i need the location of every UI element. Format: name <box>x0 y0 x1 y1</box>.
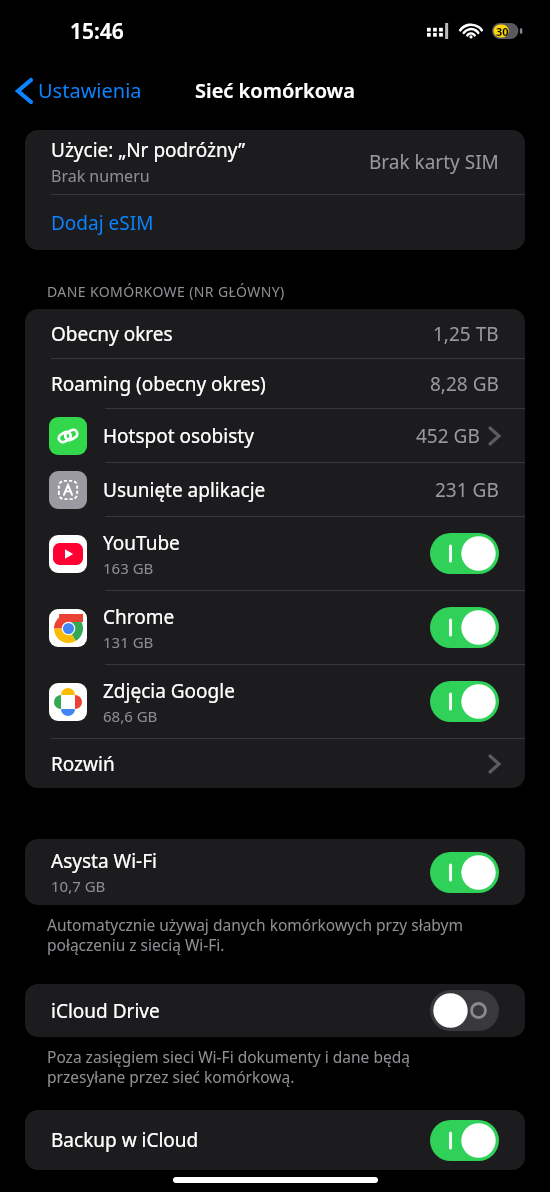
staticText: 68,6 GB <box>103 706 158 726</box>
staticText: 163 GB <box>103 558 154 578</box>
staticText: Brak karty SIM <box>369 149 499 175</box>
staticText: Brak numeru <box>51 165 150 187</box>
staticText: Roaming (obecny okres) <box>51 371 430 397</box>
button[interactable]: Zdjęcia Google <box>25 665 525 738</box>
button[interactable]: Asysta Wi-Fi <box>25 839 525 905</box>
button[interactable]: YouTube <box>25 517 525 590</box>
button[interactable]: Użycie: „Nr podróżny” <box>25 130 525 194</box>
button[interactable]: Hotspot osobisty <box>25 409 525 462</box>
button[interactable]: Włączone <box>430 607 499 648</box>
staticText: Zdjęcia Google <box>103 678 235 704</box>
button[interactable]: Włączone <box>430 681 499 722</box>
staticText: Obecny okres <box>51 321 433 347</box>
staticText: Rozwiń <box>51 751 490 777</box>
button[interactable]: Włączone <box>430 533 499 574</box>
staticText: 15:46 <box>70 17 124 46</box>
staticText: 8,28 GB <box>430 371 499 397</box>
button[interactable]: Chrome <box>25 591 525 664</box>
button[interactable]: Włączone <box>430 1120 499 1161</box>
staticText: Poza zasięgiem sieci Wi-Fi dokumenty i d… <box>47 1046 410 1088</box>
staticText: Chrome <box>103 604 175 630</box>
button[interactable]: Wyłączone <box>430 990 499 1031</box>
staticText: Hotspot osobisty <box>103 423 254 449</box>
staticText: Sieć komórkowa <box>195 77 355 104</box>
staticText: YouTube <box>103 530 180 556</box>
button[interactable]: Rozwiń <box>25 739 525 788</box>
staticText: 131 GB <box>103 632 154 652</box>
staticText: iCloud Drive <box>51 998 430 1024</box>
staticText: 452 GB <box>416 423 480 449</box>
staticText: 30 <box>496 24 509 39</box>
button[interactable]: Usunięte aplikacje <box>25 463 525 516</box>
staticText: Ustawienia <box>38 77 142 104</box>
button[interactable]: Włączone <box>430 852 499 893</box>
staticText: Backup w iCloud <box>51 1127 430 1153</box>
button[interactable]: iCloud Drive <box>25 984 525 1037</box>
button[interactable]: Backup w iCloud <box>25 1110 525 1170</box>
button[interactable]: Dodaj eSIM <box>25 195 525 250</box>
button[interactable]: Ustawienia <box>12 71 148 110</box>
staticText: Asysta Wi-Fi <box>51 848 157 874</box>
staticText: 10,7 GB <box>51 876 106 896</box>
staticText: Usunięte aplikacje <box>103 477 266 503</box>
staticText: Użycie: „Nr podróżny” <box>51 137 245 163</box>
staticText: Dodaj eSIM <box>51 210 154 236</box>
staticText: 231 GB <box>435 477 499 503</box>
staticText: DANE KOMÓRKOWE (NR GŁÓWNY) <box>47 282 285 301</box>
staticText: Automatycznie używaj danych komórkowych … <box>47 914 463 956</box>
staticText: 1,25 TB <box>433 321 499 347</box>
button[interactable]: Roaming (obecny okres) <box>25 359 525 408</box>
button[interactable]: Obecny okres <box>25 309 525 358</box>
